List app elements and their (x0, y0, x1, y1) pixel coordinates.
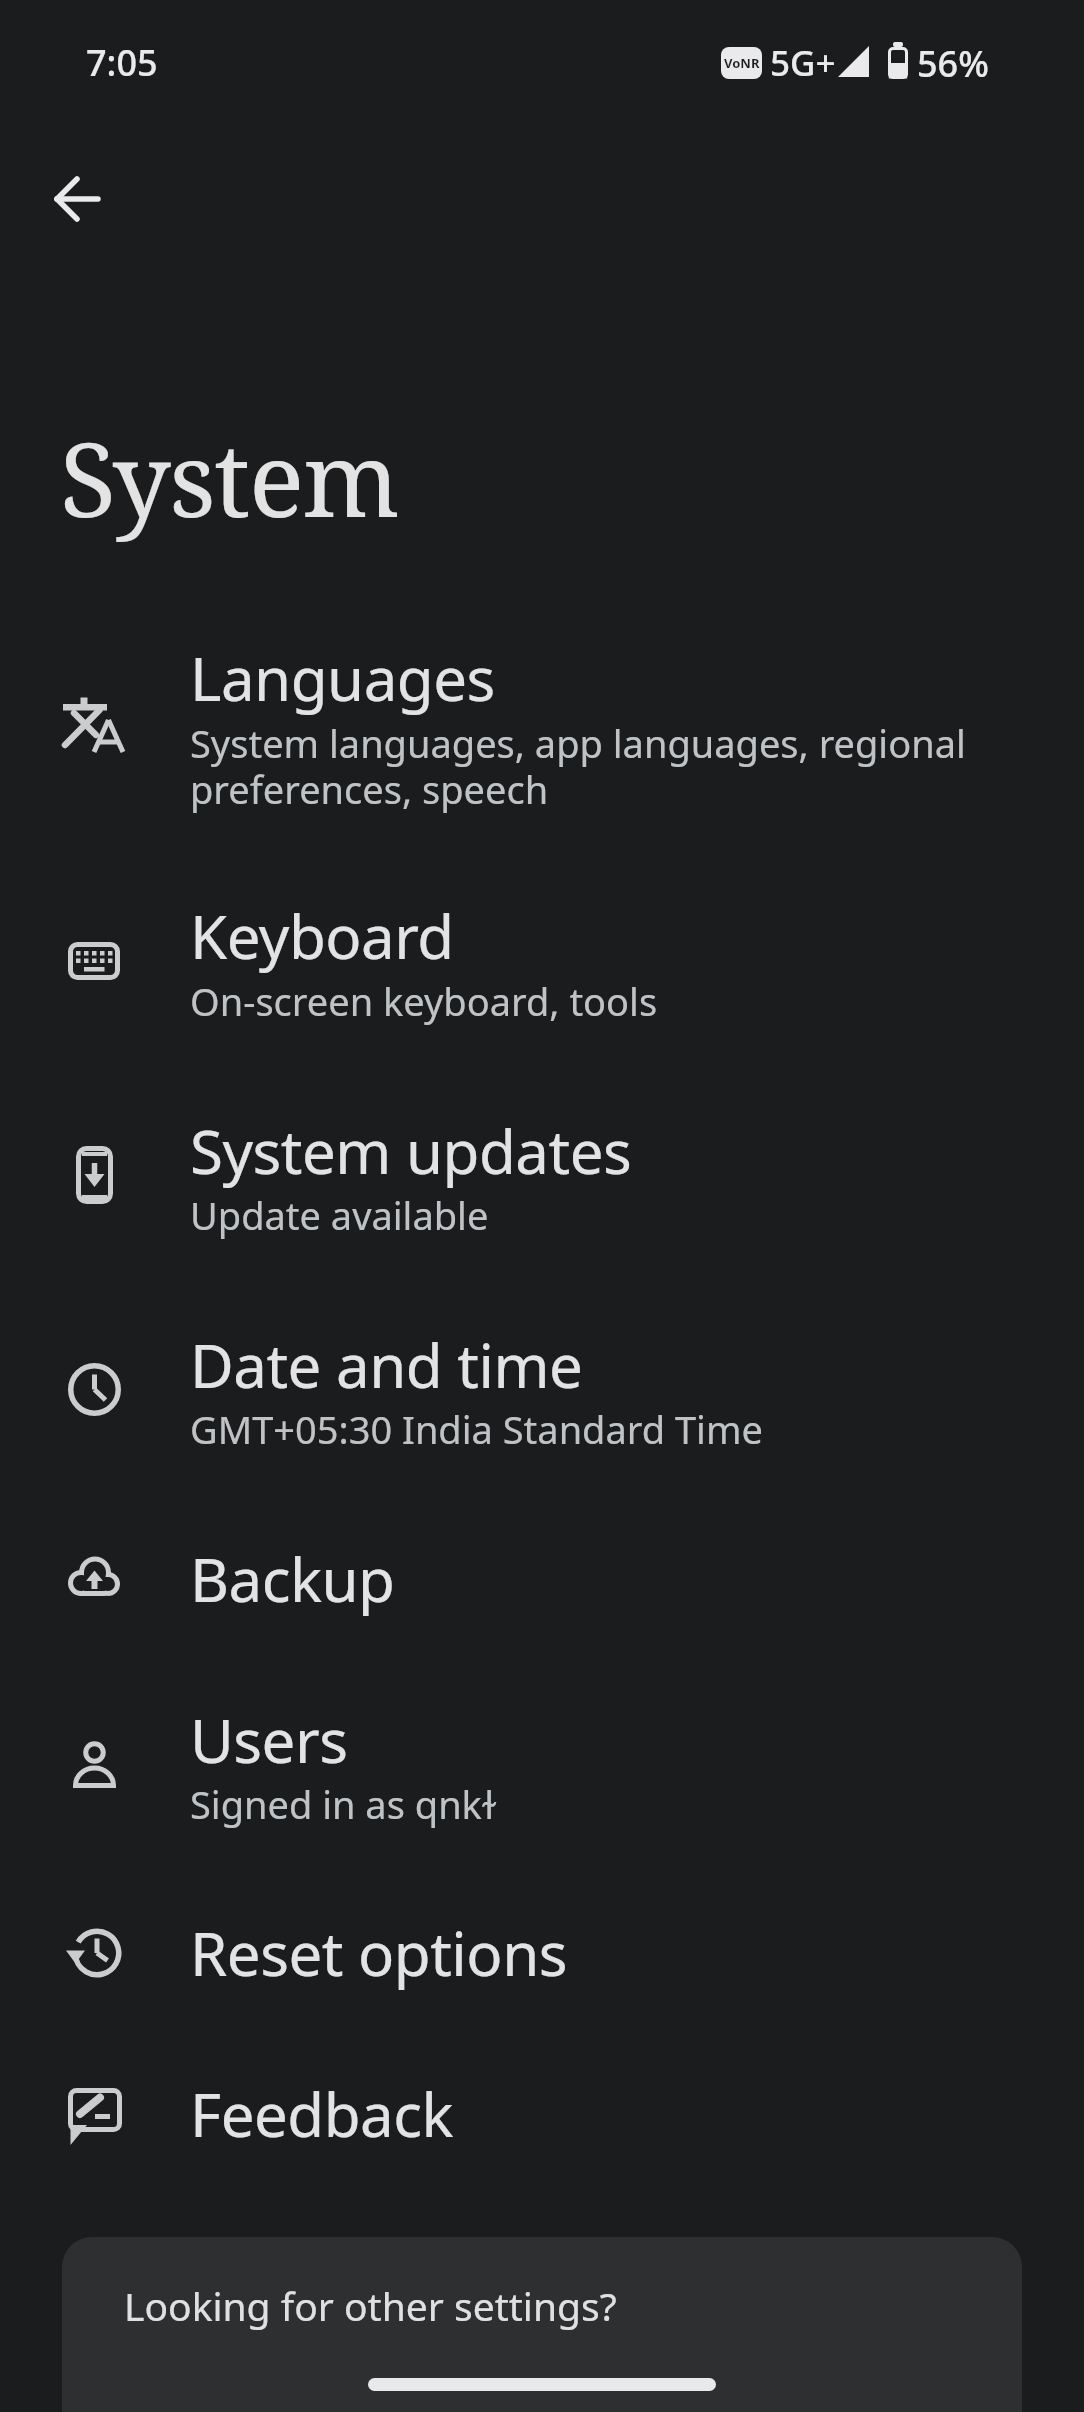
staticText: Users (190, 1699, 348, 1781)
staticText: On-screen keyboard, tools (190, 975, 658, 1027)
button[interactable]: Languages (0, 610, 1084, 860)
button[interactable]: System updates (0, 1085, 1084, 1285)
button[interactable]: Backup (0, 1503, 1084, 1655)
staticText: Date and time (190, 1324, 583, 1406)
button[interactable] (50, 172, 106, 228)
staticText: Backup (190, 1538, 395, 1620)
staticText: 56% (917, 39, 989, 88)
staticText: System (60, 407, 399, 547)
staticText: Feedback (190, 2073, 454, 2155)
staticText: Reset options (190, 1912, 567, 1994)
staticText: Signed in as qnkɫ (190, 1778, 497, 1830)
staticText: VoNR (724, 54, 760, 72)
button[interactable]: Reset options (0, 1877, 1084, 2029)
staticText: 5G+ (770, 39, 836, 87)
button[interactable]: Looking for other settings? (62, 2237, 1022, 2412)
staticText: 7:05 (86, 38, 158, 87)
button[interactable]: Feedback (0, 2038, 1084, 2190)
staticText: Update available (190, 1189, 489, 1241)
button[interactable]: Keyboard (0, 870, 1084, 1070)
button[interactable]: Users (0, 1674, 1084, 1874)
staticText: GMT+05:30 India Standard Time (190, 1403, 763, 1455)
staticText: System languages, app languages, regiona… (190, 717, 966, 815)
button[interactable]: Date and time (0, 1299, 1084, 1499)
staticText: Keyboard (190, 895, 454, 977)
staticText: Looking for other settings? (124, 2279, 617, 2332)
staticText: System updates (190, 1110, 632, 1192)
staticText: Languages (190, 637, 495, 719)
